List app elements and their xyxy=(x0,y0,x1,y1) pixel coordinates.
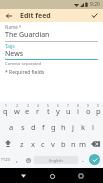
staticText: Tags xyxy=(5,43,15,49)
button[interactable]: 3 xyxy=(22,102,33,119)
staticText: Comma separated xyxy=(5,61,42,67)
staticText: Edit feed xyxy=(20,11,51,21)
button[interactable]: x xyxy=(27,135,38,152)
button[interactable]: Recent apps xyxy=(74,169,88,183)
button[interactable]: Shift xyxy=(0,135,16,152)
button[interactable]: 1 xyxy=(0,102,11,119)
button[interactable]: Navigate up xyxy=(0,9,18,22)
staticText: 0 xyxy=(97,104,99,108)
staticText: News xyxy=(5,49,23,59)
button[interactable]: a xyxy=(6,119,17,135)
staticText: m xyxy=(79,139,87,149)
staticText: 9:20 xyxy=(90,1,100,8)
button[interactable]: k xyxy=(78,119,88,135)
staticText: p xyxy=(96,106,101,116)
button[interactable]: Enter xyxy=(87,152,103,168)
staticText: t xyxy=(47,106,50,116)
staticText: b xyxy=(61,139,66,149)
staticText: English xyxy=(49,158,63,163)
button[interactable]: Home xyxy=(45,169,59,183)
staticText: The Guardian xyxy=(5,30,50,40)
button[interactable]: v xyxy=(48,135,58,152)
staticText: , xyxy=(16,155,18,165)
staticText: n xyxy=(71,139,76,149)
button[interactable]: j xyxy=(68,119,78,135)
staticText: a xyxy=(9,122,14,132)
staticText: c xyxy=(41,139,45,149)
button[interactable]: . xyxy=(79,152,87,168)
button[interactable]: 6 xyxy=(53,102,63,119)
button[interactable]: 5 xyxy=(43,102,53,119)
button[interactable]: ?123 xyxy=(0,152,11,168)
button[interactable]: Save xyxy=(85,9,103,22)
button[interactable]: m xyxy=(78,135,88,152)
button[interactable]: Emoji xyxy=(22,152,34,168)
staticText: 6 xyxy=(57,104,59,108)
staticText: ?123 xyxy=(1,157,11,163)
button[interactable]: f xyxy=(38,119,48,135)
staticText: l xyxy=(92,122,94,132)
button[interactable]: n xyxy=(68,135,78,152)
button[interactable]: Back xyxy=(16,169,30,183)
staticText: r xyxy=(36,106,40,116)
button[interactable]: 7 xyxy=(63,102,73,119)
staticText: k xyxy=(81,122,86,132)
staticText: * Required fields xyxy=(5,69,45,76)
staticText: i xyxy=(77,106,79,116)
staticText: v xyxy=(51,139,55,149)
staticText: s xyxy=(21,122,25,132)
staticText: f xyxy=(42,122,45,132)
staticText: w xyxy=(14,106,20,116)
staticText: 2 xyxy=(16,104,18,108)
staticText: Name * xyxy=(5,24,22,30)
staticText: e xyxy=(25,106,30,116)
button[interactable]: 4 xyxy=(33,102,43,119)
staticText: 4 xyxy=(37,104,39,108)
button[interactable]: 8 xyxy=(73,102,83,119)
button[interactable]: English xyxy=(34,156,78,164)
staticText: 9 xyxy=(87,104,89,108)
staticText: q xyxy=(3,106,8,116)
staticText: d xyxy=(31,122,36,132)
button[interactable]: 2 xyxy=(11,102,22,119)
button[interactable]: Backspace xyxy=(88,135,103,152)
button[interactable]: l xyxy=(88,119,98,135)
staticText: o xyxy=(86,106,91,116)
staticText: z xyxy=(20,139,24,149)
staticText: 1 xyxy=(5,104,7,108)
button[interactable]: c xyxy=(38,135,48,152)
staticText: 3 xyxy=(27,104,29,108)
staticText: u xyxy=(66,106,71,116)
staticText: 5 xyxy=(47,104,49,108)
staticText: j xyxy=(72,122,74,132)
button[interactable]: d xyxy=(28,119,38,135)
button[interactable]: b xyxy=(58,135,68,152)
button[interactable]: 0 xyxy=(93,102,103,119)
button[interactable]: 9 xyxy=(83,102,93,119)
button[interactable]: z xyxy=(16,135,27,152)
staticText: x xyxy=(31,139,35,149)
staticText: y xyxy=(56,106,60,116)
button[interactable]: g xyxy=(48,119,58,135)
button[interactable]: h xyxy=(58,119,68,135)
staticText: g xyxy=(51,122,56,132)
staticText: h xyxy=(61,122,66,132)
button[interactable]: , xyxy=(11,152,22,168)
staticText: . xyxy=(82,155,84,165)
staticText: 7 xyxy=(67,104,69,108)
staticText: 8 xyxy=(77,104,79,108)
button[interactable]: s xyxy=(17,119,28,135)
